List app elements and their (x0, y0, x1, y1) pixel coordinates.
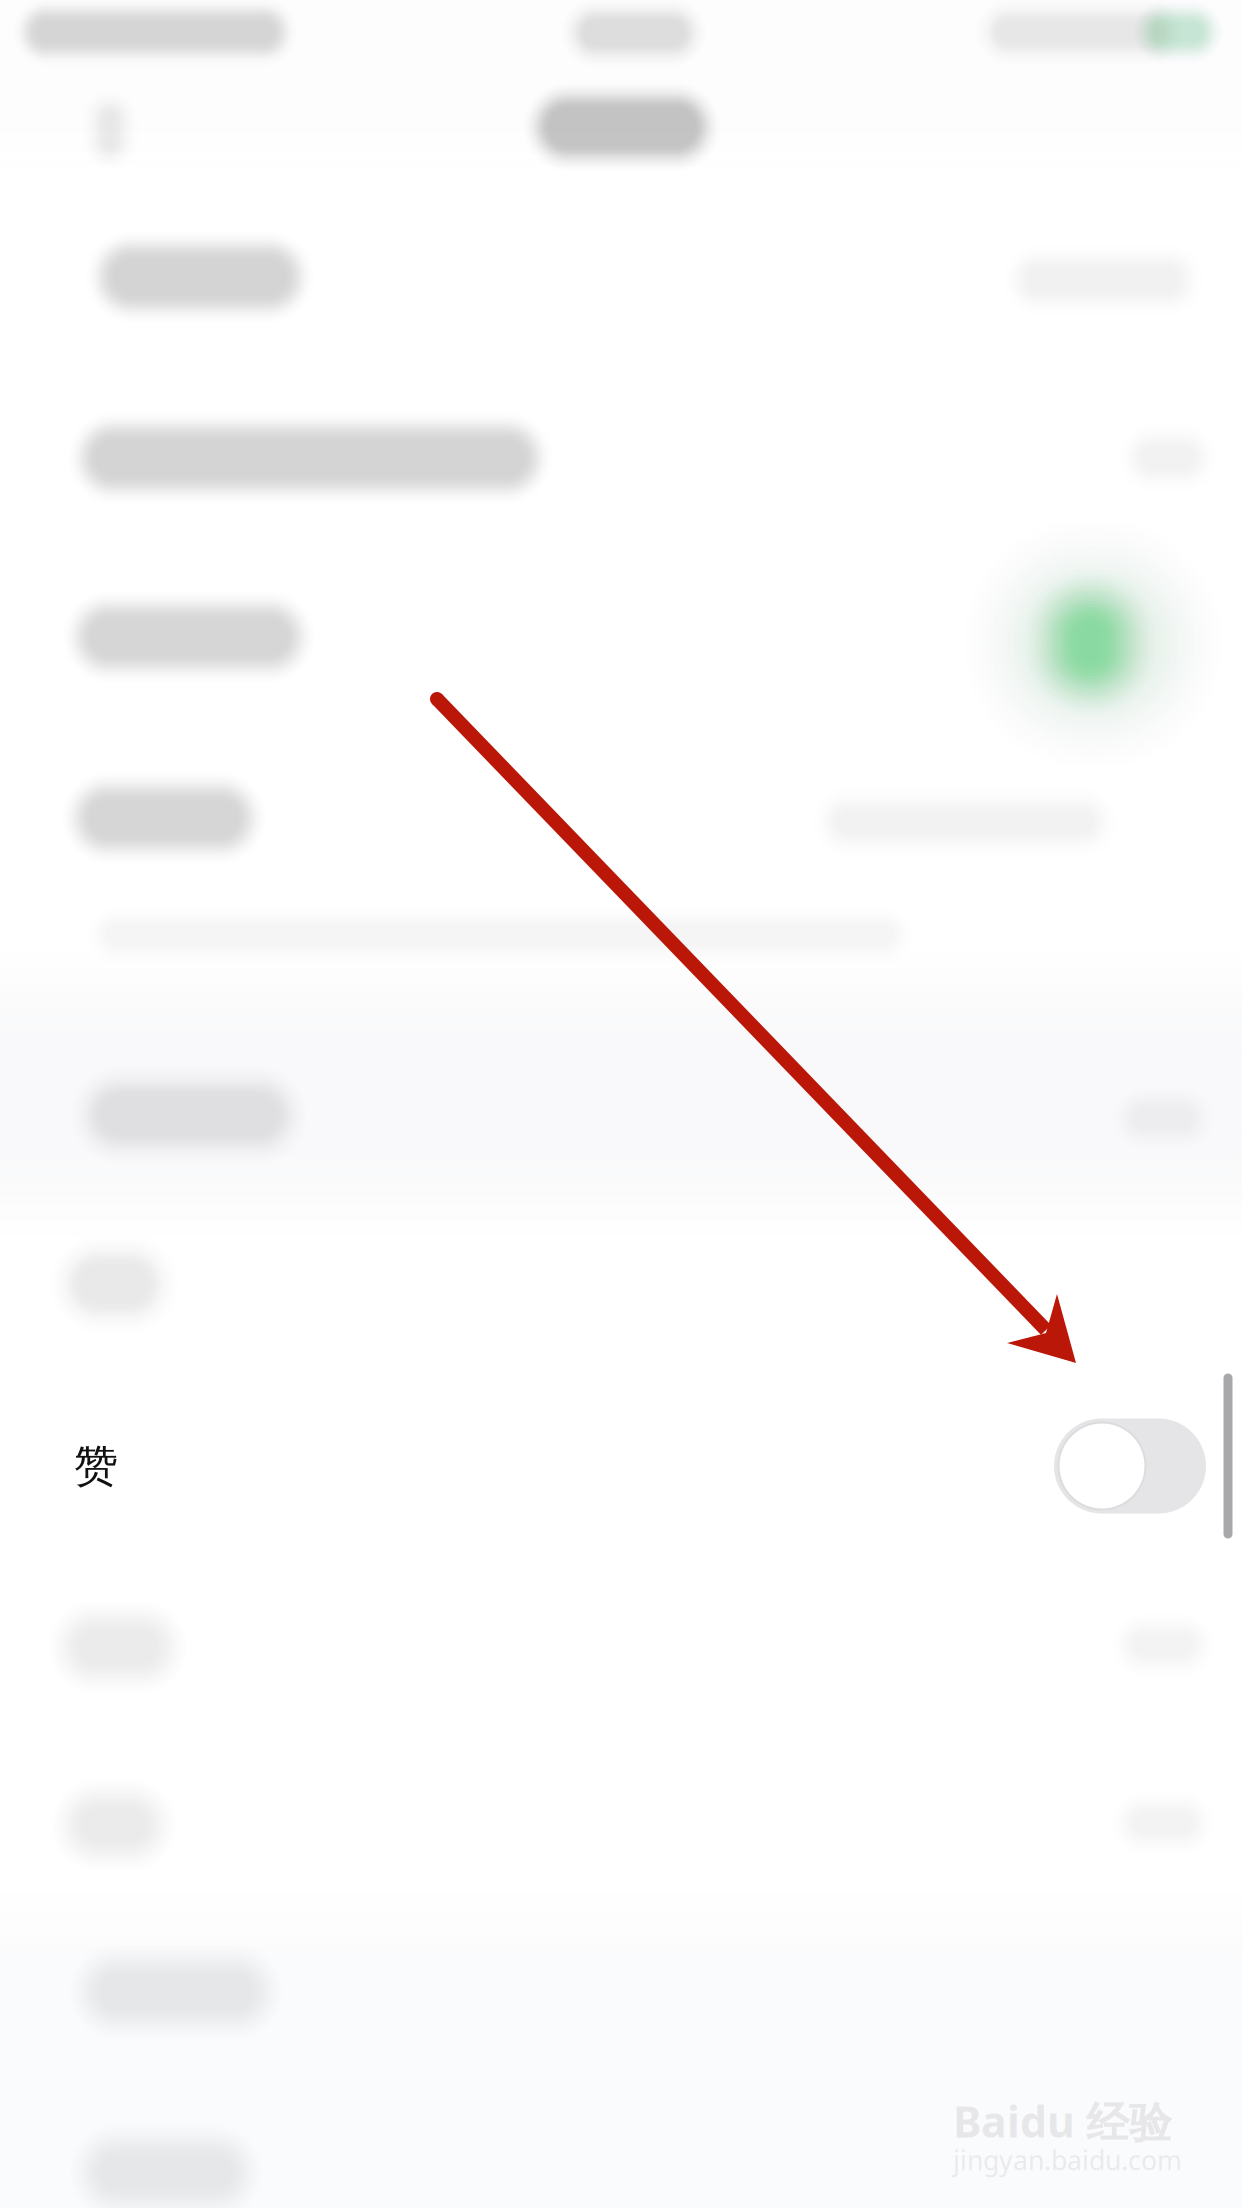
staticText: jingyan.baidu.com (953, 2142, 1182, 2178)
button[interactable]: 赞 (0, 1376, 1242, 1555)
staticText: Baidu 经验 (953, 2093, 1172, 2149)
staticText: 赞 (74, 1439, 118, 1493)
